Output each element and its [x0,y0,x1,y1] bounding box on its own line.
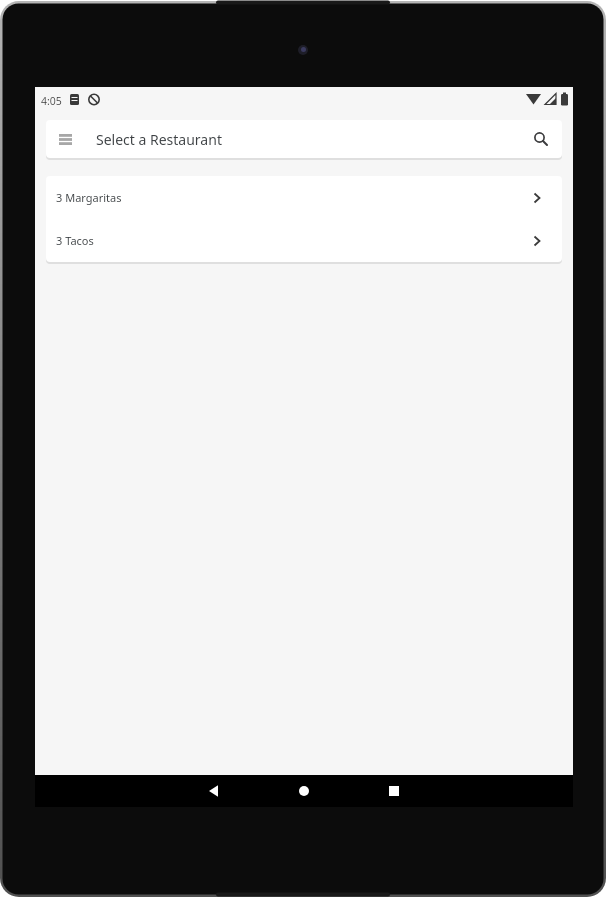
button[interactable]: 3 Margaritas [46,176,562,219]
button[interactable] [215,775,394,807]
staticText: Select a Restaurant [96,130,222,149]
staticText: 3 Margaritas [56,190,122,205]
button[interactable] [394,775,573,807]
staticText: 3 Tacos [56,233,94,248]
staticText: 4:05 [41,94,62,108]
button[interactable] [35,775,215,807]
button[interactable]: 3 Tacos [46,219,562,262]
button[interactable] [525,123,557,155]
button[interactable] [47,127,83,151]
